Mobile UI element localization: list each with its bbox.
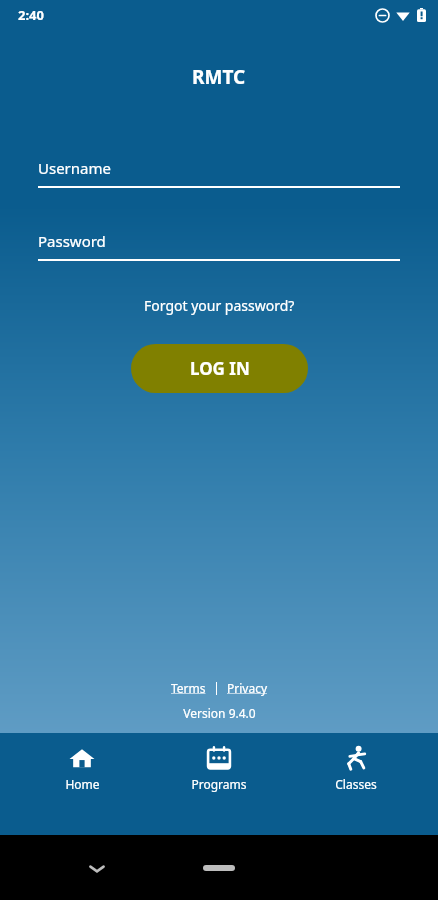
staticText: Terms [171,680,206,696]
staticText: 2:40 [18,6,44,24]
staticText: Forgot your password? [144,296,295,315]
button[interactable]: Forgot your password? [136,294,303,317]
staticText: Classes [335,776,377,792]
button[interactable]: Programs [164,733,274,792]
button[interactable]: Home [203,865,235,871]
staticText: Version 9.4.0 [183,705,256,721]
button[interactable]: Back [82,859,112,879]
staticText: Home [65,776,100,792]
button[interactable]: Username [38,158,400,188]
button[interactable]: Terms [167,678,210,698]
button[interactable]: Privacy [223,678,272,698]
button[interactable]: LOG IN [131,344,308,393]
staticText: Password [38,231,106,251]
button[interactable]: Classes [301,733,411,792]
staticText: Privacy [227,680,268,696]
staticText: Username [38,158,111,178]
button[interactable]: Password [38,231,400,261]
staticText: LOG IN [190,357,250,380]
staticText: Programs [191,776,247,792]
button[interactable]: Home [27,733,137,792]
staticText: RMTC [192,64,246,90]
